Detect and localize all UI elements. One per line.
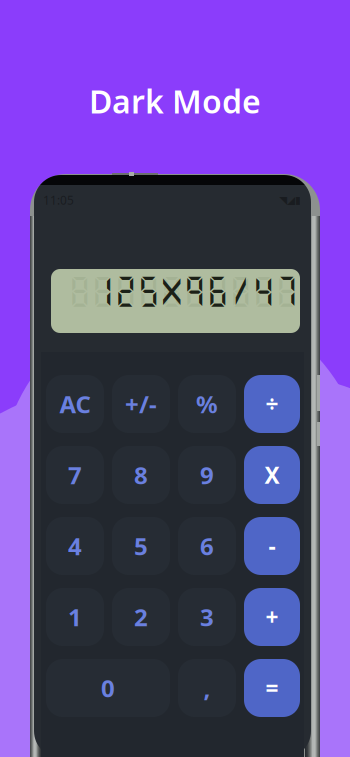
button[interactable]: 6 [178, 517, 236, 575]
button[interactable]: + [244, 588, 300, 646]
staticText: + [265, 602, 278, 632]
button[interactable]: 5 [112, 517, 170, 575]
button[interactable]: 3 [178, 588, 236, 646]
staticText: = [265, 673, 278, 703]
staticText: 3 [200, 601, 214, 633]
staticText: 125X96/47 [91, 272, 298, 310]
staticText: +/- [125, 388, 157, 420]
button[interactable]: 8 [112, 446, 170, 504]
button[interactable]: % [178, 375, 236, 433]
staticText: 8 [134, 459, 148, 491]
button[interactable]: 0 [46, 659, 170, 717]
staticText: 9 [200, 459, 214, 491]
staticText: ÷ [265, 389, 278, 419]
staticText: 5 [134, 530, 148, 562]
staticText: AC [59, 388, 90, 420]
staticText: - [268, 531, 275, 561]
button[interactable]: , [178, 659, 236, 717]
staticText: , [203, 672, 210, 704]
button[interactable]: 1 [46, 588, 104, 646]
button[interactable]: - [244, 517, 300, 575]
staticText: 2 [134, 601, 148, 633]
staticText: 11:05 [43, 192, 74, 208]
button[interactable]: 4 [46, 517, 104, 575]
button[interactable]: X [244, 446, 300, 504]
staticText: 7 [68, 459, 82, 491]
staticText: ◥◢▮ [279, 194, 301, 206]
staticText: Dark Mode [89, 80, 261, 122]
button[interactable]: = [244, 659, 300, 717]
staticText: % [196, 388, 218, 420]
button[interactable]: 9 [178, 446, 236, 504]
button[interactable]: 2 [112, 588, 170, 646]
staticText: 8888888888888 [0, 272, 298, 310]
staticText: 4 [68, 530, 82, 562]
staticText: 0 [101, 672, 115, 704]
button[interactable]: 7 [46, 446, 104, 504]
staticText: X [264, 460, 279, 490]
button[interactable]: +/- [112, 375, 170, 433]
button[interactable]: AC [46, 375, 104, 433]
staticText: 1 [68, 601, 82, 633]
button[interactable]: ÷ [244, 375, 300, 433]
staticText: 6 [200, 530, 214, 562]
